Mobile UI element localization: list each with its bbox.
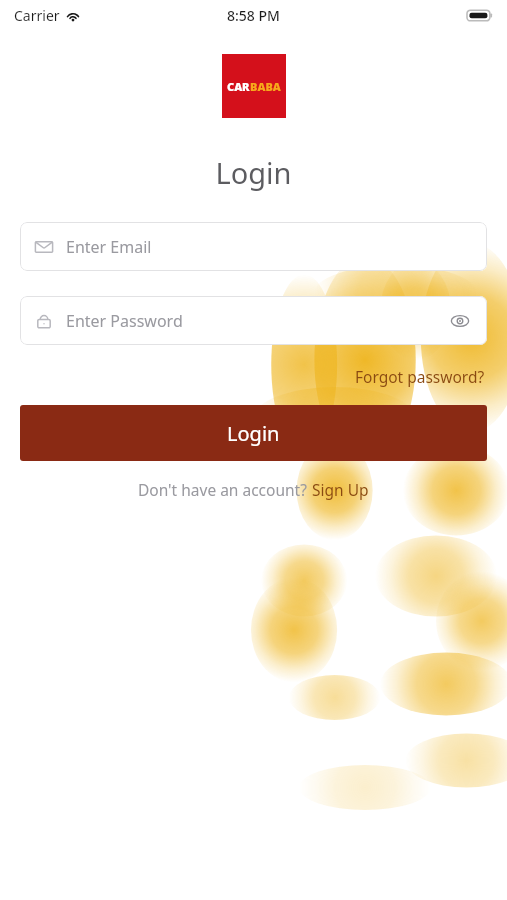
button[interactable]: Show password — [447, 308, 473, 334]
staticText: Forgot password? — [355, 366, 485, 387]
staticText: Don't have an account? — [138, 479, 311, 500]
staticText: Carrier — [14, 6, 60, 25]
button[interactable]: Enter Email — [20, 222, 487, 271]
staticText: Login — [227, 420, 280, 447]
staticText: Enter Password — [66, 310, 183, 332]
staticText: BABA — [250, 79, 281, 94]
staticText: Sign Up — [312, 479, 369, 500]
button[interactable]: Login — [20, 405, 487, 461]
staticText: 8:58 PM — [227, 6, 280, 25]
button[interactable]: Forgot password? — [353, 364, 487, 389]
staticText: CAR — [227, 79, 250, 94]
staticText: Enter Email — [66, 236, 152, 258]
button[interactable]: Sign Up — [311, 477, 370, 502]
staticText: Login — [0, 153, 507, 192]
button[interactable]: Enter Password — [20, 296, 487, 345]
